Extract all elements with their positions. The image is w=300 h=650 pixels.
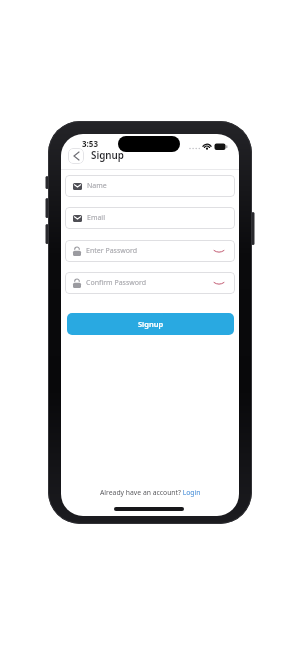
button[interactable] xyxy=(68,148,84,164)
staticText: Enter Password xyxy=(86,246,138,256)
button[interactable]: Confirm Password xyxy=(65,272,235,294)
button[interactable]: Signup xyxy=(67,313,234,335)
staticText: Already have an account? Login xyxy=(100,488,201,497)
button[interactable]: Email xyxy=(65,207,235,229)
staticText: Signup xyxy=(91,149,124,162)
button[interactable]: Enter Password xyxy=(65,240,235,262)
button[interactable]: Already have an account? Login xyxy=(61,488,239,497)
staticText: Name xyxy=(87,181,107,191)
button[interactable]: Name xyxy=(65,175,235,197)
staticText: Signup xyxy=(138,319,164,329)
staticText: Confirm Password xyxy=(86,278,147,288)
staticText: 3:53 xyxy=(82,138,98,149)
staticText: Email xyxy=(87,213,105,223)
